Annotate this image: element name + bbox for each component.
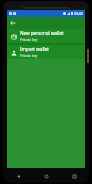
- button[interactable]: Back: [13, 171, 23, 181]
- staticText: 09:42: [74, 11, 83, 16]
- button[interactable]: Recent apps: [69, 171, 79, 181]
- button[interactable]: New personal wallet: [7, 29, 85, 43]
- staticText: Private key: [20, 37, 38, 42]
- staticText: Private key: [20, 53, 38, 58]
- button[interactable]: Import wallet: [7, 45, 85, 59]
- button[interactable]: Back: [8, 18, 18, 28]
- staticText: Import wallet: [20, 46, 50, 52]
- staticText: New personal wallet: [20, 30, 64, 36]
- button[interactable]: Home: [41, 171, 51, 181]
